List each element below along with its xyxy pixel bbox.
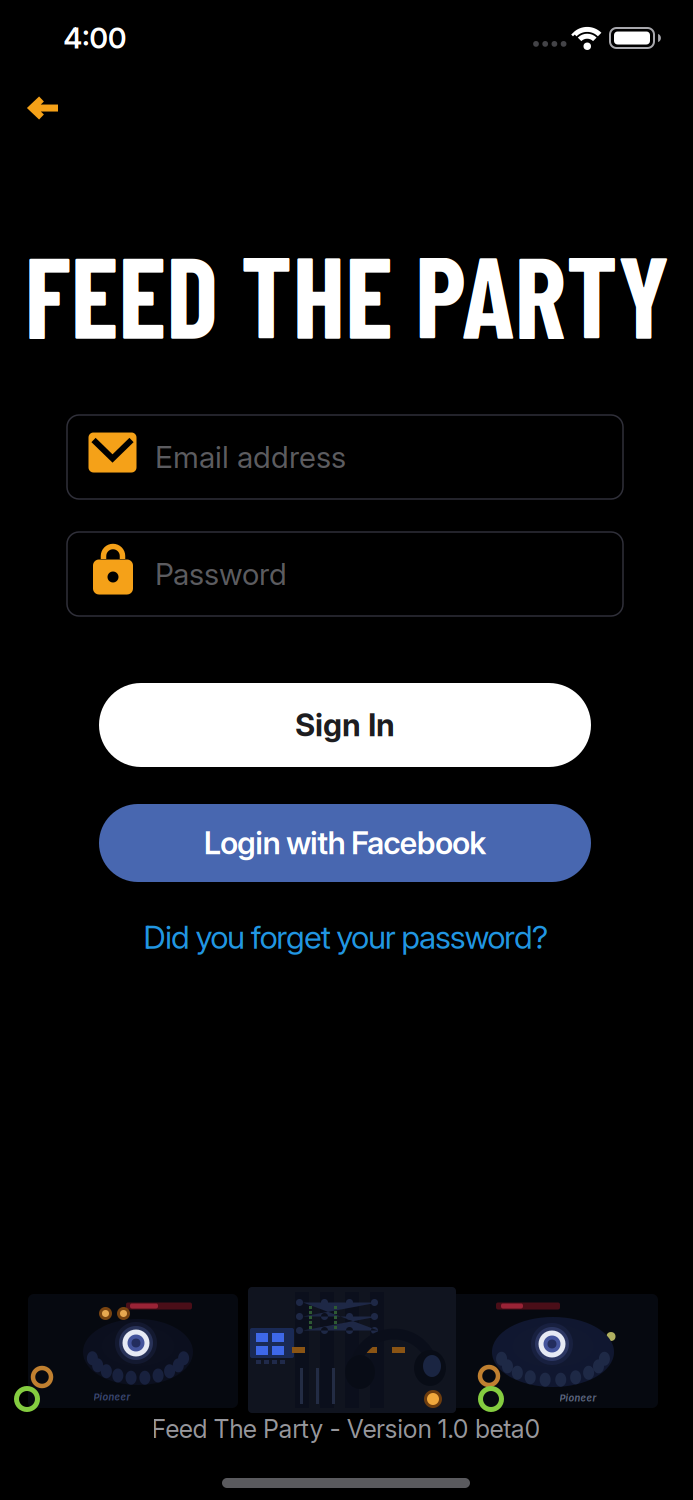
button[interactable]	[27, 97, 59, 119]
staticText: Feed The Party - Version 1.0 beta0	[152, 1414, 540, 1444]
button[interactable]: Login with Facebook	[99, 804, 591, 882]
staticText: Email address	[155, 439, 346, 475]
staticText: Password	[155, 556, 287, 592]
staticText: Login with Facebook	[204, 824, 486, 862]
button[interactable]: Password	[67, 532, 623, 616]
staticText: Did you forget your password?	[143, 918, 549, 956]
staticText: FEED THE PARTY	[10, 224, 684, 362]
staticText: 4:00	[63, 20, 127, 56]
button[interactable]: Email address	[67, 415, 623, 499]
staticText: Sign In	[295, 706, 395, 744]
button[interactable]: Sign In	[99, 683, 591, 767]
button[interactable]: Did you forget your password?	[143, 918, 549, 956]
staticText: Pioneer	[93, 1391, 130, 1403]
staticText: Pioneer	[559, 1392, 596, 1404]
